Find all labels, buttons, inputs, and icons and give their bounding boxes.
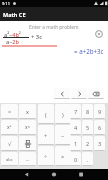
staticText: 8 xyxy=(86,108,90,115)
button[interactable]: × xyxy=(55,146,71,166)
button[interactable] xyxy=(19,136,36,151)
button[interactable]: 0 xyxy=(70,152,81,166)
staticText: 9:11 xyxy=(2,1,10,6)
button[interactable]: 8 xyxy=(82,104,93,119)
button[interactable]: √ xyxy=(1,136,18,151)
staticText: . xyxy=(87,156,89,163)
button[interactable] xyxy=(72,169,108,180)
staticText: 6 xyxy=(98,124,102,131)
button[interactable]: 4 xyxy=(70,120,81,135)
button[interactable]: 5 xyxy=(82,120,93,135)
staticText: × xyxy=(61,153,65,160)
button[interactable]: 2 xyxy=(82,136,93,151)
staticText: x² xyxy=(7,124,12,131)
button[interactable] xyxy=(36,169,72,180)
button[interactable] xyxy=(95,30,103,38)
button[interactable]: 7 xyxy=(70,104,81,119)
staticText: 2 xyxy=(86,140,90,147)
button[interactable]: 3 xyxy=(94,136,105,151)
button[interactable]: ÷ xyxy=(38,146,54,166)
button[interactable]: xⁿ xyxy=(19,120,36,135)
staticText: ÷ xyxy=(44,153,48,160)
button[interactable]: − xyxy=(55,125,71,145)
staticText: ( xyxy=(45,111,47,118)
button[interactable] xyxy=(88,88,104,99)
staticText: a²−4b² xyxy=(4,31,21,38)
staticText: 7 xyxy=(74,108,78,115)
staticText: Enter a math problem xyxy=(29,24,79,31)
staticText: a−2b xyxy=(6,38,19,45)
button[interactable]: … xyxy=(19,152,36,166)
staticText: = xyxy=(8,108,12,115)
button[interactable]: 1 xyxy=(70,136,81,151)
staticText: + 3c xyxy=(31,33,42,41)
button[interactable]: ) xyxy=(55,104,71,124)
button[interactable]: abc xyxy=(1,152,18,166)
button[interactable]: 9 xyxy=(94,104,105,119)
staticText: 0 xyxy=(74,156,78,163)
staticText: 1 xyxy=(74,140,78,147)
staticText: Math CE xyxy=(3,11,26,18)
staticText: x xyxy=(26,108,29,115)
staticText: … xyxy=(26,156,30,162)
staticText: + xyxy=(44,132,48,139)
staticText: ) xyxy=(62,111,64,118)
staticText: √ xyxy=(8,141,12,147)
staticText: = a+2b+3c xyxy=(74,47,104,55)
staticText: 9 xyxy=(98,108,102,115)
button[interactable] xyxy=(71,88,87,99)
button[interactable]: ( xyxy=(38,104,54,124)
button[interactable]: x xyxy=(19,104,36,119)
button[interactable] xyxy=(54,88,70,99)
staticText: xⁿ xyxy=(25,124,30,131)
staticText: abc xyxy=(6,157,13,162)
staticText: − xyxy=(61,132,65,139)
staticText: 3 xyxy=(98,140,102,147)
button[interactable]: + xyxy=(38,125,54,145)
staticText: 5 xyxy=(86,124,90,131)
button[interactable]: . xyxy=(82,152,93,166)
button[interactable]: x² xyxy=(1,120,18,135)
button[interactable] xyxy=(0,169,36,180)
button[interactable]: = xyxy=(1,104,18,119)
staticText: 4 xyxy=(74,124,78,131)
button[interactable]: 6 xyxy=(94,120,105,135)
